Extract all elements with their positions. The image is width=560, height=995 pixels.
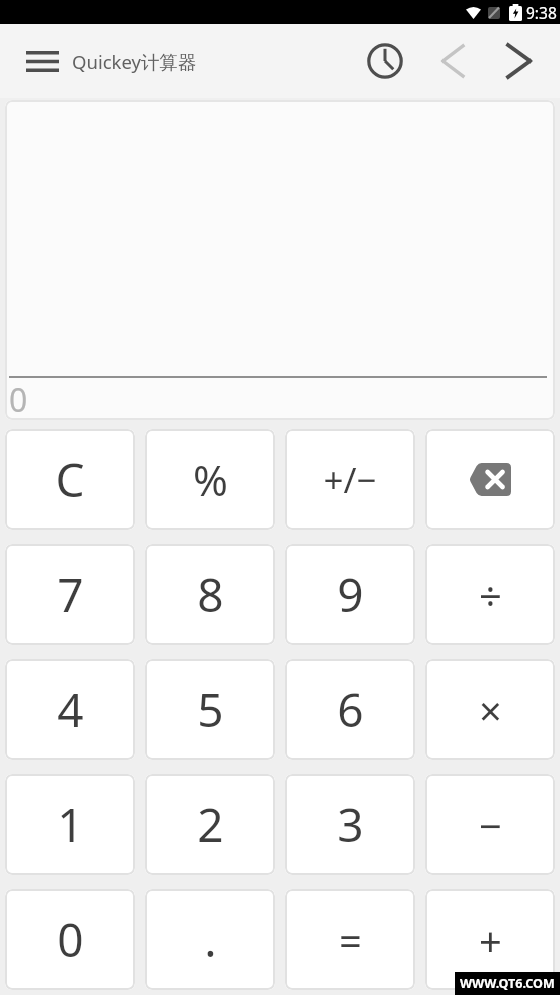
staticText: 9:38 — [526, 2, 557, 23]
staticText: WWW.QT6.COM — [460, 975, 555, 992]
button[interactable]: − — [425, 774, 555, 875]
staticText: . — [204, 908, 217, 971]
staticText: − — [479, 798, 502, 852]
staticText: C — [55, 448, 85, 511]
staticText: Quickey计算器 — [72, 49, 197, 74]
staticText: 1 — [57, 793, 84, 856]
button[interactable]: 1 — [5, 774, 135, 875]
button[interactable] — [18, 37, 66, 85]
button[interactable]: 6 — [285, 659, 415, 760]
button[interactable]: +/− — [285, 429, 415, 530]
staticText: 7 — [57, 563, 84, 626]
button[interactable]: % — [145, 429, 275, 530]
staticText: % — [193, 451, 228, 508]
staticText: ÷ — [479, 568, 502, 622]
button[interactable]: 9 — [285, 544, 415, 645]
button[interactable] — [429, 37, 477, 85]
staticText: 0 — [57, 908, 84, 971]
button[interactable]: 0 — [5, 889, 135, 990]
button[interactable]: = — [285, 889, 415, 990]
button[interactable]: ÷ — [425, 544, 555, 645]
button[interactable]: × — [425, 659, 555, 760]
staticText: 3 — [337, 793, 364, 856]
button[interactable]: 7 — [5, 544, 135, 645]
button[interactable] — [361, 37, 409, 85]
staticText: 0 — [9, 378, 28, 420]
staticText: 2 — [197, 793, 224, 856]
button[interactable]: C — [5, 429, 135, 530]
staticText: 5 — [197, 678, 224, 741]
staticText: 8 — [197, 563, 224, 626]
staticText: × — [479, 683, 502, 737]
button[interactable]: 8 — [145, 544, 275, 645]
button[interactable]: + — [425, 889, 555, 990]
button[interactable]: 3 — [285, 774, 415, 875]
staticText: 4 — [57, 678, 84, 741]
button[interactable] — [495, 37, 543, 85]
button[interactable]: 2 — [145, 774, 275, 875]
button[interactable]: . — [145, 889, 275, 990]
staticText: 6 — [337, 678, 364, 741]
button[interactable] — [425, 429, 555, 530]
button[interactable]: 4 — [5, 659, 135, 760]
staticText: 9 — [337, 563, 364, 626]
staticText: + — [479, 913, 502, 967]
staticText: +/− — [323, 456, 377, 504]
button[interactable]: 5 — [145, 659, 275, 760]
staticText: = — [339, 913, 362, 967]
